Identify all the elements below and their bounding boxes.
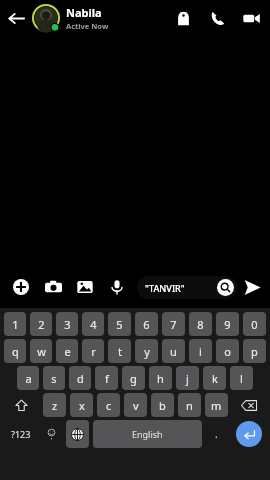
staticText: q xyxy=(12,344,19,359)
staticText: o xyxy=(224,344,231,359)
button[interactable]: English xyxy=(93,420,202,448)
staticText: p xyxy=(251,344,258,359)
staticText: s xyxy=(51,371,57,386)
staticText: b xyxy=(159,398,166,413)
button[interactable]: 8 xyxy=(189,312,212,336)
button[interactable]: e xyxy=(56,339,78,363)
staticText: . xyxy=(215,427,218,441)
button[interactable]: Call xyxy=(200,1,234,35)
staticText: c xyxy=(106,398,112,413)
button[interactable]: . xyxy=(204,420,229,448)
button[interactable]: Send xyxy=(237,272,267,302)
button[interactable]: o xyxy=(216,339,239,363)
button[interactable]: Change language xyxy=(66,420,89,448)
button[interactable]: Backspace xyxy=(232,393,266,417)
button[interactable]: h xyxy=(149,366,172,390)
button[interactable]: i xyxy=(189,339,212,363)
button[interactable]: u xyxy=(162,339,185,363)
staticText: h xyxy=(157,371,164,386)
button[interactable]: Tag xyxy=(166,1,200,35)
staticText: a xyxy=(25,371,32,386)
staticText: 8 xyxy=(197,317,204,332)
staticText: m xyxy=(211,398,222,413)
staticText: English xyxy=(132,428,163,440)
staticText: z xyxy=(52,398,58,413)
button[interactable]: f xyxy=(95,366,118,390)
staticText: x xyxy=(79,398,85,413)
button[interactable]: 7 xyxy=(162,312,185,336)
staticText: d xyxy=(77,371,84,386)
staticText: g xyxy=(130,371,137,386)
staticText: w xyxy=(37,344,46,359)
button[interactable]: d xyxy=(69,366,91,390)
button[interactable]: 4 xyxy=(82,312,104,336)
staticText: Active Now xyxy=(66,21,109,31)
staticText: 6 xyxy=(143,317,150,332)
staticText: e xyxy=(64,344,71,359)
staticText: 5 xyxy=(116,317,123,332)
button[interactable]: Back xyxy=(0,2,32,34)
button[interactable]: y xyxy=(135,339,158,363)
staticText: v xyxy=(133,398,139,413)
staticText: y xyxy=(144,344,150,359)
button[interactable]: ?123 xyxy=(2,420,39,448)
button[interactable] xyxy=(32,4,60,32)
button[interactable]: t xyxy=(108,339,131,363)
button[interactable]: Camera xyxy=(40,274,66,300)
button[interactable]: r xyxy=(82,339,104,363)
staticText: 0 xyxy=(251,317,258,332)
button[interactable]: j xyxy=(176,366,199,390)
staticText: k xyxy=(212,371,218,386)
staticText: 9 xyxy=(224,317,231,332)
button[interactable]: s xyxy=(43,366,65,390)
staticText: j xyxy=(186,371,189,386)
button[interactable]: Enter xyxy=(236,421,262,447)
button[interactable]: Video call xyxy=(234,1,268,35)
button[interactable]: 6 xyxy=(135,312,158,336)
staticText: Nabila xyxy=(66,5,102,20)
button[interactable]: 0 xyxy=(243,312,266,336)
button[interactable]: 5 xyxy=(108,312,131,336)
button[interactable]: g xyxy=(122,366,145,390)
button[interactable]: 1 xyxy=(4,312,26,336)
button[interactable]: k xyxy=(203,366,226,390)
button[interactable]: 2 xyxy=(30,312,52,336)
button[interactable]: w xyxy=(30,339,52,363)
staticText: f xyxy=(105,371,109,386)
button[interactable]: 9 xyxy=(216,312,239,336)
staticText: n xyxy=(186,398,193,413)
staticText: u xyxy=(170,344,177,359)
staticText: 3 xyxy=(64,317,71,332)
button[interactable]: Gallery xyxy=(72,274,98,300)
button[interactable]: Voice message xyxy=(104,274,130,300)
button[interactable]: b xyxy=(151,393,174,417)
staticText: r xyxy=(91,344,96,359)
button[interactable]: Emoji xyxy=(39,420,64,448)
button[interactable]: v xyxy=(124,393,147,417)
staticText: 4 xyxy=(90,317,97,332)
button[interactable]: c xyxy=(97,393,120,417)
staticText: ?123 xyxy=(11,428,31,440)
staticText: t xyxy=(118,344,122,359)
button[interactable]: a xyxy=(17,366,39,390)
button[interactable]: Nabila xyxy=(66,5,166,31)
button[interactable]: Shift xyxy=(4,393,39,417)
button[interactable]: n xyxy=(178,393,201,417)
staticText: "TANVIR" xyxy=(145,282,185,294)
staticText: i xyxy=(199,344,202,359)
staticText: l xyxy=(240,371,243,386)
button[interactable]: q xyxy=(4,339,26,363)
staticText: 1 xyxy=(12,317,19,332)
button[interactable]: z xyxy=(43,393,66,417)
button[interactable]: 3 xyxy=(56,312,78,336)
button[interactable]: More options xyxy=(8,274,34,300)
button[interactable]: "TANVIR" xyxy=(137,276,237,299)
button[interactable]: p xyxy=(243,339,266,363)
staticText: 7 xyxy=(170,317,177,332)
button[interactable]: l xyxy=(230,366,253,390)
button[interactable]: x xyxy=(70,393,93,417)
staticText: 2 xyxy=(38,317,45,332)
button[interactable]: m xyxy=(205,393,228,417)
